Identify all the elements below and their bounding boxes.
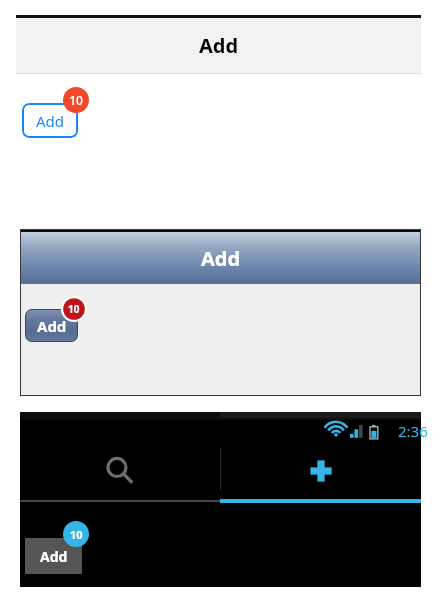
button[interactable]: Add (22, 103, 78, 138)
button[interactable]: Add (220, 442, 421, 500)
button[interactable]: Add (25, 538, 82, 574)
button[interactable]: Add (25, 309, 78, 342)
staticText: Add (199, 32, 239, 59)
staticText: 10 (70, 527, 83, 542)
staticText: 10 (68, 302, 80, 316)
staticText: Add (40, 547, 68, 566)
button[interactable]: Search (20, 442, 220, 500)
staticText: 2:36 (398, 421, 428, 441)
staticText: Add (36, 111, 65, 131)
staticText: Add (201, 245, 241, 272)
staticText: 10 (69, 92, 83, 108)
other: Status icons (320, 420, 395, 442)
staticText: Add (37, 316, 67, 336)
